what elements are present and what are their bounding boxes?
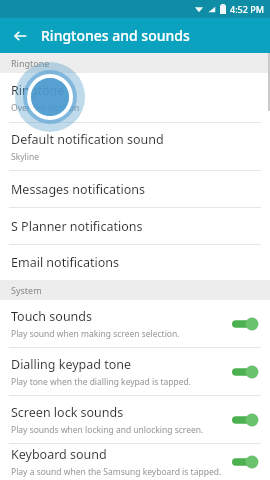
- button[interactable]: Screen lock sounds: [0, 396, 270, 443]
- staticText: Ringtone: [11, 82, 65, 99]
- button[interactable]: Touch sounds: [0, 300, 270, 347]
- button[interactable]: Touch sounds toggle, on: [232, 315, 262, 333]
- button[interactable]: Back: [9, 25, 31, 47]
- staticText: 4:52 PM: [230, 3, 264, 15]
- staticText: Play sound when making screen selection.: [11, 328, 180, 340]
- button[interactable]: Dialling keypad tone: [0, 348, 270, 395]
- button[interactable]: Screen lock sounds toggle, on: [232, 411, 262, 429]
- staticText: Ringtones and sounds: [41, 26, 190, 45]
- staticText: Play tone when the dialling keypad is ta…: [11, 376, 192, 388]
- staticText: Over the Horizon: [11, 102, 80, 114]
- staticText: Skyline: [11, 151, 39, 163]
- button[interactable]: Ringtone: [0, 73, 270, 122]
- staticText: Ringtone: [11, 57, 50, 69]
- staticText: Play sounds when locking and unlocking s…: [11, 424, 204, 436]
- button[interactable]: Email notifications: [0, 245, 270, 280]
- staticText: Play a sound when the Samsung keyboard i…: [11, 466, 222, 478]
- staticText: Dialling keypad tone: [11, 356, 132, 373]
- staticText: Email notifications: [11, 254, 119, 271]
- button[interactable]: S Planner notifications: [0, 208, 270, 244]
- staticText: S Planner notifications: [11, 218, 143, 235]
- button[interactable]: Dialling keypad tone toggle, on: [232, 363, 262, 381]
- button[interactable]: Keyboard sound: [0, 444, 270, 480]
- button[interactable]: Default notification sound: [0, 123, 270, 170]
- staticText: Default notification sound: [11, 131, 164, 148]
- staticText: Messages notifications: [11, 181, 145, 198]
- button[interactable]: Keyboard sound toggle, on: [232, 453, 262, 471]
- button[interactable]: Messages notifications: [0, 171, 270, 207]
- staticText: Keyboard sound: [11, 446, 107, 463]
- staticText: Touch sounds: [11, 308, 93, 325]
- staticText: Screen lock sounds: [11, 404, 124, 421]
- staticText: System: [11, 284, 42, 296]
